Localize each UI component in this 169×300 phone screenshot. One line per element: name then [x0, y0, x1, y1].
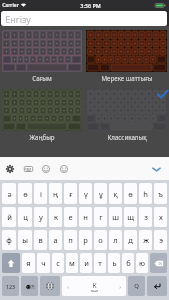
button[interactable]: Switch keyboard	[40, 276, 60, 296]
button[interactable]: ь	[108, 253, 120, 273]
staticText: ұ	[99, 189, 103, 199]
button[interactable]: ю	[136, 253, 148, 273]
button[interactable]: х	[154, 207, 167, 227]
staticText: е	[68, 212, 73, 222]
button[interactable]: к	[49, 207, 62, 227]
button[interactable]: о	[94, 230, 107, 250]
button[interactable]: Сағым	[0, 30, 84, 84]
button[interactable]: и	[80, 253, 92, 273]
button[interactable]: ө	[124, 183, 137, 204]
button[interactable]: ч	[37, 253, 50, 273]
button[interactable]: а	[49, 230, 62, 250]
staticText: щ	[127, 212, 134, 222]
button[interactable]: у	[34, 207, 47, 227]
staticText: и	[84, 258, 89, 268]
staticText: ц	[23, 212, 28, 222]
button[interactable]: э	[154, 230, 167, 250]
staticText: 3:36 PM	[80, 2, 101, 9]
staticText: ә	[7, 189, 12, 199]
button[interactable]: з	[139, 207, 152, 227]
staticText: д	[128, 235, 133, 245]
staticText: ғ	[69, 189, 73, 199]
button[interactable]: я	[22, 253, 35, 273]
staticText: с	[56, 258, 60, 268]
button[interactable]: щ	[124, 207, 137, 227]
staticText: ш	[112, 212, 119, 222]
staticText: ү	[84, 189, 88, 199]
staticText: ›	[119, 283, 121, 290]
button[interactable]: в	[34, 230, 47, 250]
button[interactable]: Backspace	[150, 253, 167, 273]
staticText: о	[98, 235, 103, 245]
button[interactable]: ☻?!	[21, 276, 38, 296]
staticText: ъ	[158, 189, 163, 199]
button[interactable]: 123	[2, 276, 19, 296]
button[interactable]: ң	[49, 183, 62, 204]
button[interactable]: Emoji	[38, 161, 54, 177]
staticText: ы	[22, 235, 28, 245]
button[interactable]: Return	[147, 276, 167, 296]
staticText: ф	[6, 235, 12, 245]
button[interactable]: й	[2, 207, 16, 227]
button[interactable]: һ	[139, 183, 152, 204]
staticText: б	[126, 258, 131, 268]
staticText: Классикалық	[107, 133, 147, 141]
staticText: г	[99, 212, 103, 222]
staticText: Q	[134, 282, 139, 290]
button[interactable]: н	[79, 207, 92, 227]
button[interactable]: т	[94, 253, 106, 273]
button[interactable]: Q	[128, 276, 145, 296]
staticText: ‹	[67, 283, 69, 290]
button[interactable]: ф	[2, 230, 16, 250]
staticText: 123	[6, 283, 15, 290]
button[interactable]: с	[52, 253, 64, 273]
button[interactable]: ғ	[64, 183, 77, 204]
button[interactable]: л	[109, 230, 122, 250]
button[interactable]: Мереке шаттығы	[84, 30, 169, 84]
button[interactable]: Классикалық	[84, 89, 169, 144]
button[interactable]: ц	[18, 207, 32, 227]
button[interactable]: і	[34, 183, 47, 204]
button[interactable]: Stickers	[56, 161, 72, 177]
button[interactable]: Енгізу	[1, 11, 167, 26]
staticText: Carrier	[2, 2, 19, 9]
staticText: э	[159, 235, 163, 245]
staticText: Сағым	[32, 74, 52, 82]
staticText: р	[83, 235, 88, 245]
staticText: ө	[128, 189, 133, 199]
button[interactable]: ә	[2, 183, 16, 204]
button[interactable]: ү	[79, 183, 92, 204]
button[interactable]: м	[66, 253, 78, 273]
staticText: һ	[143, 189, 148, 199]
staticText: К	[92, 281, 97, 290]
button[interactable]: п	[64, 230, 77, 250]
button[interactable]: ъ	[154, 183, 167, 204]
button[interactable]: е	[64, 207, 77, 227]
button[interactable]: ш	[109, 207, 122, 227]
staticText: в	[38, 235, 43, 245]
staticText: Мереке шаттығы	[101, 74, 153, 82]
staticText: ч	[41, 258, 46, 268]
staticText: к	[54, 212, 58, 222]
button[interactable]: ы	[18, 230, 32, 250]
button[interactable]: Жаңбыр	[0, 89, 84, 144]
staticText: і	[40, 189, 42, 199]
button[interactable]: ж	[139, 230, 152, 250]
staticText: х	[159, 212, 163, 222]
button[interactable]: Shift	[2, 253, 20, 273]
button[interactable]: Keyboard	[20, 161, 36, 177]
button[interactable]: Collapse keyboard	[148, 161, 164, 177]
button[interactable]: Settings	[2, 161, 18, 177]
button[interactable]: р	[79, 230, 92, 250]
staticText: ь	[112, 258, 117, 268]
button[interactable]: ұ	[94, 183, 107, 204]
button[interactable]: д	[124, 230, 137, 250]
staticText: п	[68, 235, 73, 245]
button[interactable]: ө	[18, 183, 32, 204]
staticText: Жаңбыр	[29, 133, 55, 141]
button[interactable]: г	[94, 207, 107, 227]
staticText: Енгізу	[5, 13, 31, 25]
button[interactable]: space	[62, 276, 126, 296]
button[interactable]: б	[122, 253, 134, 273]
button[interactable]: қ	[109, 183, 122, 204]
